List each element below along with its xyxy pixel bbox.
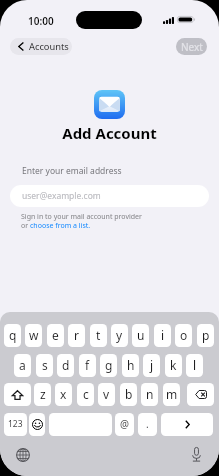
staticText: s (42, 357, 48, 373)
button[interactable]: d (57, 354, 74, 377)
staticText: z (40, 386, 46, 402)
staticText: y (116, 327, 123, 343)
staticText: 123 (8, 418, 23, 430)
button[interactable]: c (77, 383, 94, 406)
button[interactable]: u (132, 324, 149, 347)
staticText: h (127, 357, 135, 373)
button[interactable]: choose from a list. (30, 221, 91, 231)
staticText: i (161, 327, 165, 343)
staticText: t (96, 327, 101, 343)
staticText: q (9, 327, 17, 343)
button[interactable]: 123 (4, 413, 27, 436)
button[interactable]: o (175, 324, 192, 347)
staticText: m (166, 386, 178, 402)
staticText: a (19, 357, 26, 373)
button[interactable]: f (79, 354, 96, 377)
button[interactable]: r (68, 324, 85, 347)
button[interactable]: p (197, 324, 214, 347)
staticText: p (202, 327, 210, 343)
button[interactable]: Backspace (187, 383, 214, 406)
button[interactable]: m (163, 383, 180, 406)
staticText: Accounts (29, 40, 69, 53)
staticText: 10:00 (28, 14, 54, 28)
button[interactable]: t (90, 324, 107, 347)
staticText: d (62, 357, 70, 373)
staticText: Next (181, 40, 203, 54)
staticText: o (180, 327, 188, 343)
button[interactable]: q (4, 324, 21, 347)
button[interactable]: z (34, 383, 51, 406)
button[interactable]: x (55, 383, 72, 406)
staticText: b (125, 386, 133, 402)
button[interactable]: l (186, 354, 203, 377)
staticText: Add Account (0, 123, 219, 143)
staticText: j (150, 357, 154, 373)
staticText: . (146, 417, 149, 431)
button[interactable]: Emoji (29, 413, 45, 436)
staticText: u (137, 327, 145, 343)
button[interactable]: v (98, 383, 115, 406)
staticText: f (85, 357, 90, 373)
staticText: g (105, 357, 113, 373)
staticText: user@example.com (22, 190, 101, 202)
button[interactable]: b (120, 383, 137, 406)
button[interactable]: @ (115, 413, 134, 436)
button[interactable]: y (111, 324, 128, 347)
button[interactable]: k (165, 354, 182, 377)
button[interactable]: Dictation (190, 447, 203, 462)
button[interactable]: s (36, 354, 53, 377)
button[interactable]: i (154, 324, 171, 347)
staticText: l (193, 357, 197, 373)
staticText: Enter your email address (22, 165, 122, 177)
button[interactable]: w (25, 324, 42, 347)
staticText: Sign in to your mail account provider (21, 212, 142, 222)
staticText: k (170, 357, 177, 373)
button[interactable]: a (14, 354, 31, 377)
staticText: @ (120, 417, 129, 431)
button[interactable]: user@example.com (10, 185, 209, 207)
staticText: x (60, 386, 67, 402)
button[interactable]: Space (49, 413, 112, 436)
button[interactable]: . (138, 413, 157, 436)
staticText: w (29, 327, 39, 343)
button[interactable]: j (143, 354, 160, 377)
button[interactable]: g (100, 354, 117, 377)
button[interactable]: Accounts (10, 38, 72, 55)
staticText: or (21, 221, 30, 231)
button[interactable]: Go (161, 413, 213, 436)
staticText: r (74, 327, 79, 343)
button[interactable]: Switch language (16, 448, 30, 462)
staticText: e (52, 327, 59, 343)
staticText: c (83, 386, 89, 402)
staticText: v (103, 386, 110, 402)
button[interactable]: e (47, 324, 64, 347)
staticText: n (146, 386, 154, 402)
button[interactable]: h (122, 354, 139, 377)
button[interactable]: n (141, 383, 158, 406)
button[interactable]: Next (176, 38, 207, 55)
button[interactable]: Shift (4, 383, 31, 406)
